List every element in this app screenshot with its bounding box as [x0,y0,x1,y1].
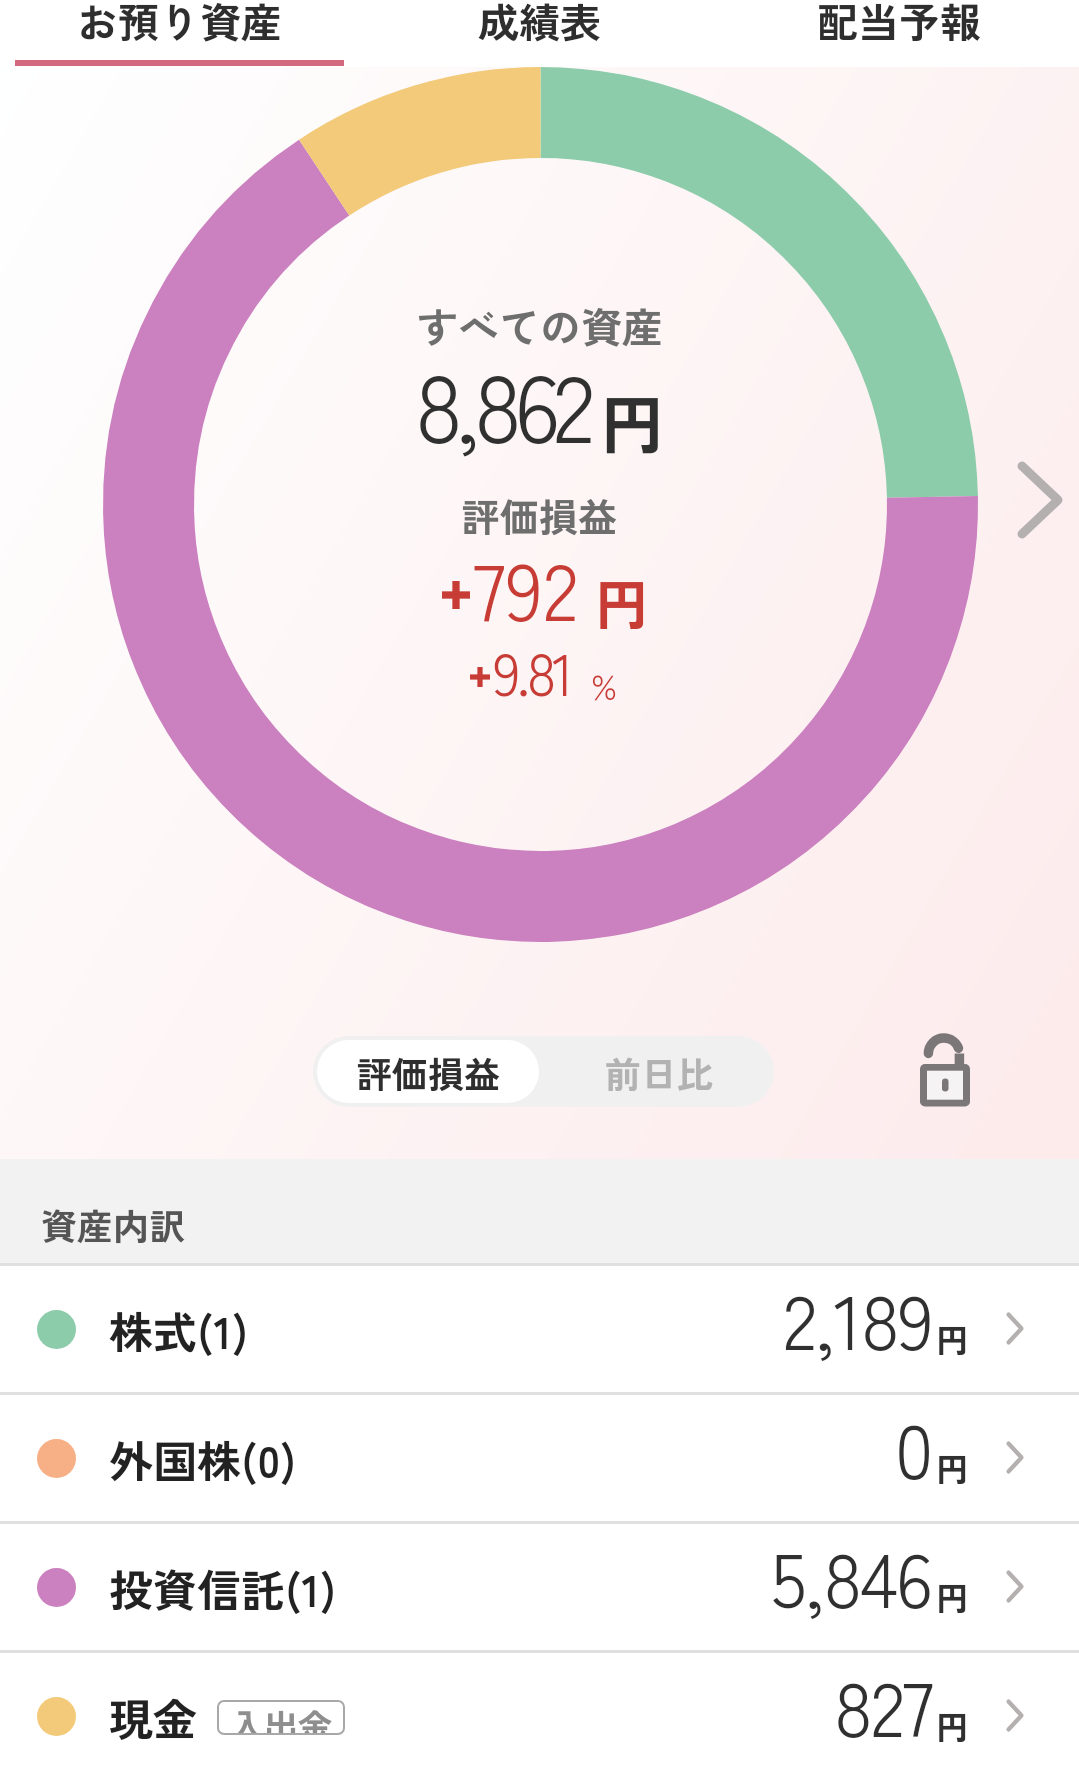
staticText: 配当予報 [817,0,981,49]
staticText: 5,846 [771,1520,932,1630]
button[interactable]: 次の資産へ [1006,450,1074,550]
staticText: 外国株(0) [109,1427,297,1491]
button[interactable]: 現金 [0,1653,1079,1779]
staticText: 円 [936,1315,969,1363]
staticText: 資産内訳 [41,1198,186,1250]
staticText: 円 [936,1444,969,1492]
staticText: 2,189 [783,1262,932,1372]
staticText: 現金 [109,1685,197,1749]
staticText: 円 [600,375,664,468]
staticText: 株式(1) [109,1298,249,1362]
staticText: 8,862 [415,334,588,470]
button[interactable]: 前日比 [544,1036,774,1107]
staticText: すべての資産 [417,295,663,354]
staticText: 円 [936,1702,969,1750]
staticText: 入出金 [230,1700,332,1735]
staticText: 投資信託(1) [109,1556,337,1620]
staticText: % [591,661,618,710]
staticText: 評価損益 [356,1046,501,1098]
button[interactable]: 株式(1) [0,1266,1079,1392]
staticText: お預り資産 [77,0,282,49]
button[interactable]: お預り資産 [0,0,359,67]
staticText: 827 [834,1649,932,1759]
button[interactable]: 投資信託(1) [0,1524,1079,1650]
button[interactable]: 成績表 [359,0,719,67]
staticText: 9.81 [493,629,571,713]
staticText: 792 [473,529,579,643]
button[interactable]: 配当予報 [719,0,1079,67]
button[interactable]: 金額表示のロック [900,955,992,1059]
staticText: 評価損益 [461,487,618,543]
staticText: 円 [936,1573,969,1621]
staticText: 円 [595,562,649,640]
staticText: 0 [895,1391,932,1501]
staticText: 成績表 [478,0,601,49]
staticText: 前日比 [605,1046,714,1098]
button[interactable]: 評価損益 [317,1040,539,1103]
button[interactable]: 外国株(0) [0,1395,1079,1521]
